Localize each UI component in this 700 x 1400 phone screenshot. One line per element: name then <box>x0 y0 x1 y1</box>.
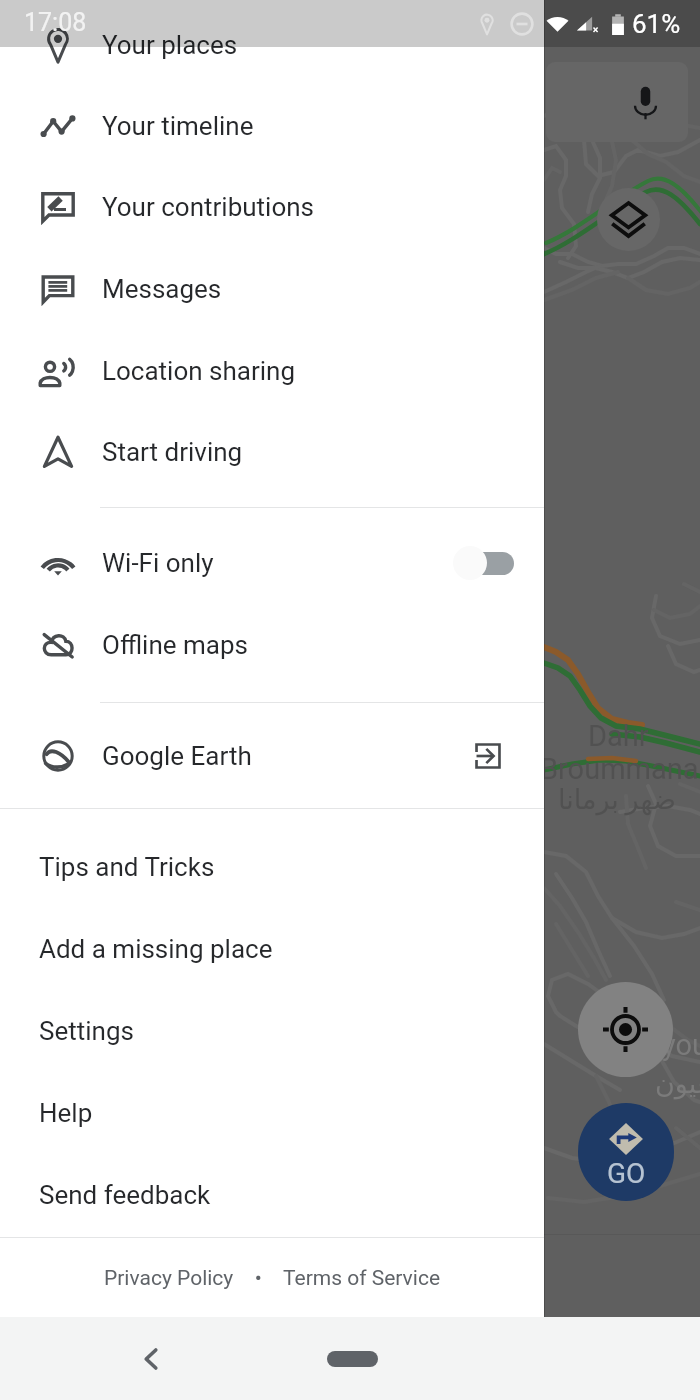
button[interactable]: Wi-Fi only <box>0 523 544 603</box>
staticText: you <box>662 1028 700 1062</box>
staticText: 17:08 <box>24 8 87 37</box>
staticText: Your contributions <box>102 192 315 222</box>
staticText: Your places <box>102 30 238 60</box>
staticText: Add a missing place <box>39 934 273 964</box>
staticText: Messages <box>102 274 222 304</box>
button[interactable]: My location <box>578 982 673 1077</box>
staticText: Location sharing <box>102 356 296 386</box>
staticText: • <box>239 1266 278 1291</box>
button[interactable]: Send feedback <box>0 1154 544 1236</box>
staticText: GO <box>607 1157 646 1190</box>
button[interactable]: Google Earth <box>0 716 544 796</box>
staticText: Your timeline <box>102 111 254 141</box>
button[interactable]: Location sharing <box>0 331 544 411</box>
button[interactable]: Your places <box>0 5 544 85</box>
staticText: Settings <box>39 1016 134 1046</box>
staticText: Broummana <box>540 752 699 786</box>
staticText: Terms of Service <box>283 1266 441 1291</box>
button[interactable]: Start driving <box>0 412 544 492</box>
staticText: 61% <box>632 9 681 39</box>
button[interactable]: Layers <box>597 188 660 251</box>
staticText: Google Earth <box>102 741 252 771</box>
staticText: Offline maps <box>102 630 248 660</box>
button[interactable]: Terms of Service <box>278 1258 446 1299</box>
button[interactable]: Voice search <box>633 85 658 120</box>
staticText: Help <box>39 1098 93 1128</box>
button[interactable]: Help <box>0 1072 544 1154</box>
button[interactable]: Your timeline <box>0 86 544 166</box>
button[interactable]: Tips and Tricks <box>0 826 544 908</box>
button[interactable]: Search here <box>546 62 688 142</box>
button[interactable]: Settings <box>0 990 544 1072</box>
staticText: Dahr <box>588 719 649 753</box>
button[interactable]: Home <box>312 1317 392 1400</box>
button[interactable]: Offline maps <box>0 605 544 685</box>
button[interactable]: Privacy Policy <box>99 1258 239 1299</box>
staticText: عيون <box>655 1068 700 1099</box>
button[interactable]: Add a missing place <box>0 908 544 990</box>
button[interactable]: Open Google Earth <box>466 732 514 780</box>
button[interactable]: Start navigation <box>578 1103 674 1201</box>
button[interactable]: Your contributions <box>0 167 544 247</box>
staticText: Start driving <box>102 437 243 467</box>
staticText: ضهر برمانا <box>558 784 676 816</box>
staticText: Tips and Tricks <box>39 852 215 882</box>
staticText: Send feedback <box>39 1180 211 1210</box>
button[interactable]: Back <box>122 1317 180 1400</box>
button[interactable]: Wi-Fi only toggle <box>452 545 514 581</box>
staticText: Privacy Policy <box>104 1266 234 1291</box>
button[interactable]: Messages <box>0 249 544 329</box>
staticText: Wi-Fi only <box>102 548 214 578</box>
